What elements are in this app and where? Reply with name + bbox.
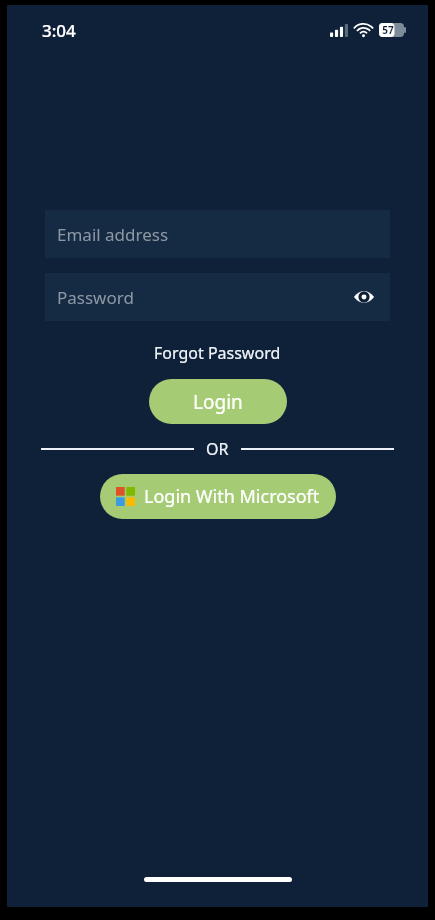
button[interactable]: Login With Microsoft xyxy=(100,474,336,519)
staticText: 57 xyxy=(382,23,394,37)
staticText: Forgot Password xyxy=(154,342,281,364)
button[interactable]: Forgot Password xyxy=(148,339,287,367)
staticText: Login With Microsoft xyxy=(144,484,320,509)
staticText: Password xyxy=(57,286,134,309)
button[interactable]: Login xyxy=(149,379,287,424)
staticText: OR xyxy=(206,438,229,460)
button[interactable]: Show password xyxy=(346,279,382,315)
button[interactable]: Email address xyxy=(45,210,390,258)
staticText: 3:04 xyxy=(42,19,76,42)
staticText: Email address xyxy=(57,223,169,246)
staticText: Login xyxy=(193,389,243,415)
button[interactable]: Password xyxy=(45,273,390,321)
